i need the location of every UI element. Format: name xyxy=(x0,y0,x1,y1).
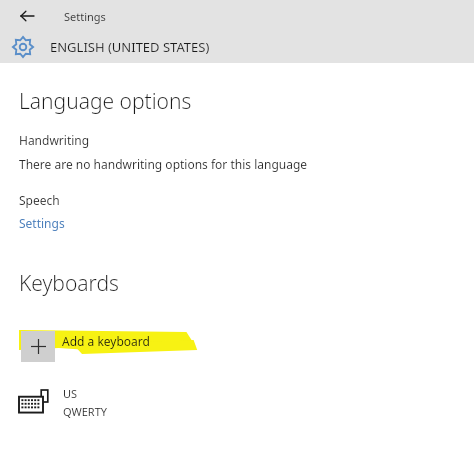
staticText: Add a keyboard xyxy=(62,333,150,349)
staticText: There are no handwriting options for thi… xyxy=(19,156,308,172)
staticText: US xyxy=(63,386,78,401)
staticText: Language options xyxy=(19,87,192,116)
staticText: Handwriting xyxy=(19,132,90,148)
button[interactable]: Add a keyboard xyxy=(19,326,199,368)
staticText: Settings xyxy=(64,9,106,24)
button[interactable]: US xyxy=(19,381,219,423)
staticText: Keyboards xyxy=(19,269,119,298)
staticText: Speech xyxy=(19,192,60,208)
button[interactable]: Settings xyxy=(19,215,65,231)
other: Settings gear xyxy=(8,32,38,62)
button[interactable]: Back xyxy=(14,2,106,30)
staticText: ENGLISH (UNITED STATES) xyxy=(50,38,210,56)
staticText: Settings xyxy=(19,215,65,231)
button[interactable]: Settings gear xyxy=(8,32,210,62)
staticText: QWERTY xyxy=(63,404,108,419)
other: Back xyxy=(14,3,40,29)
